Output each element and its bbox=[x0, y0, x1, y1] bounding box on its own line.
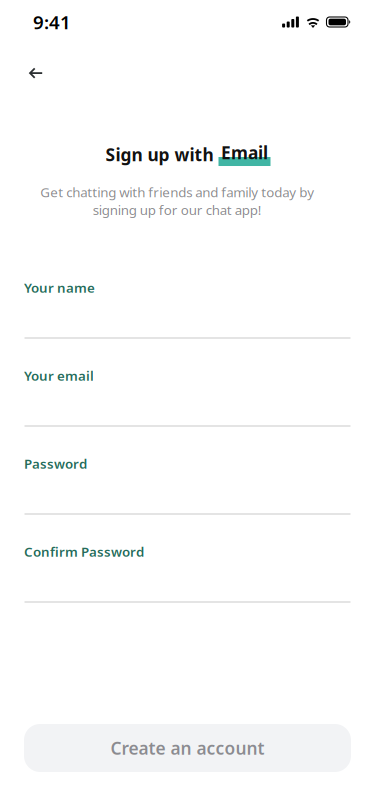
staticText: Sign up with bbox=[105, 143, 218, 166]
staticText: Your name bbox=[24, 279, 95, 296]
staticText: Email bbox=[221, 141, 268, 164]
button[interactable]: Back bbox=[14, 51, 58, 95]
staticText: Your email bbox=[24, 367, 94, 384]
button[interactable]: Create an account bbox=[24, 724, 351, 772]
staticText: Get chatting with friends and family tod… bbox=[40, 183, 314, 219]
staticText: Create an account bbox=[110, 736, 264, 759]
staticText: 9:41 bbox=[33, 10, 71, 34]
staticText: Password bbox=[24, 455, 87, 472]
staticText: Confirm Password bbox=[24, 543, 144, 560]
